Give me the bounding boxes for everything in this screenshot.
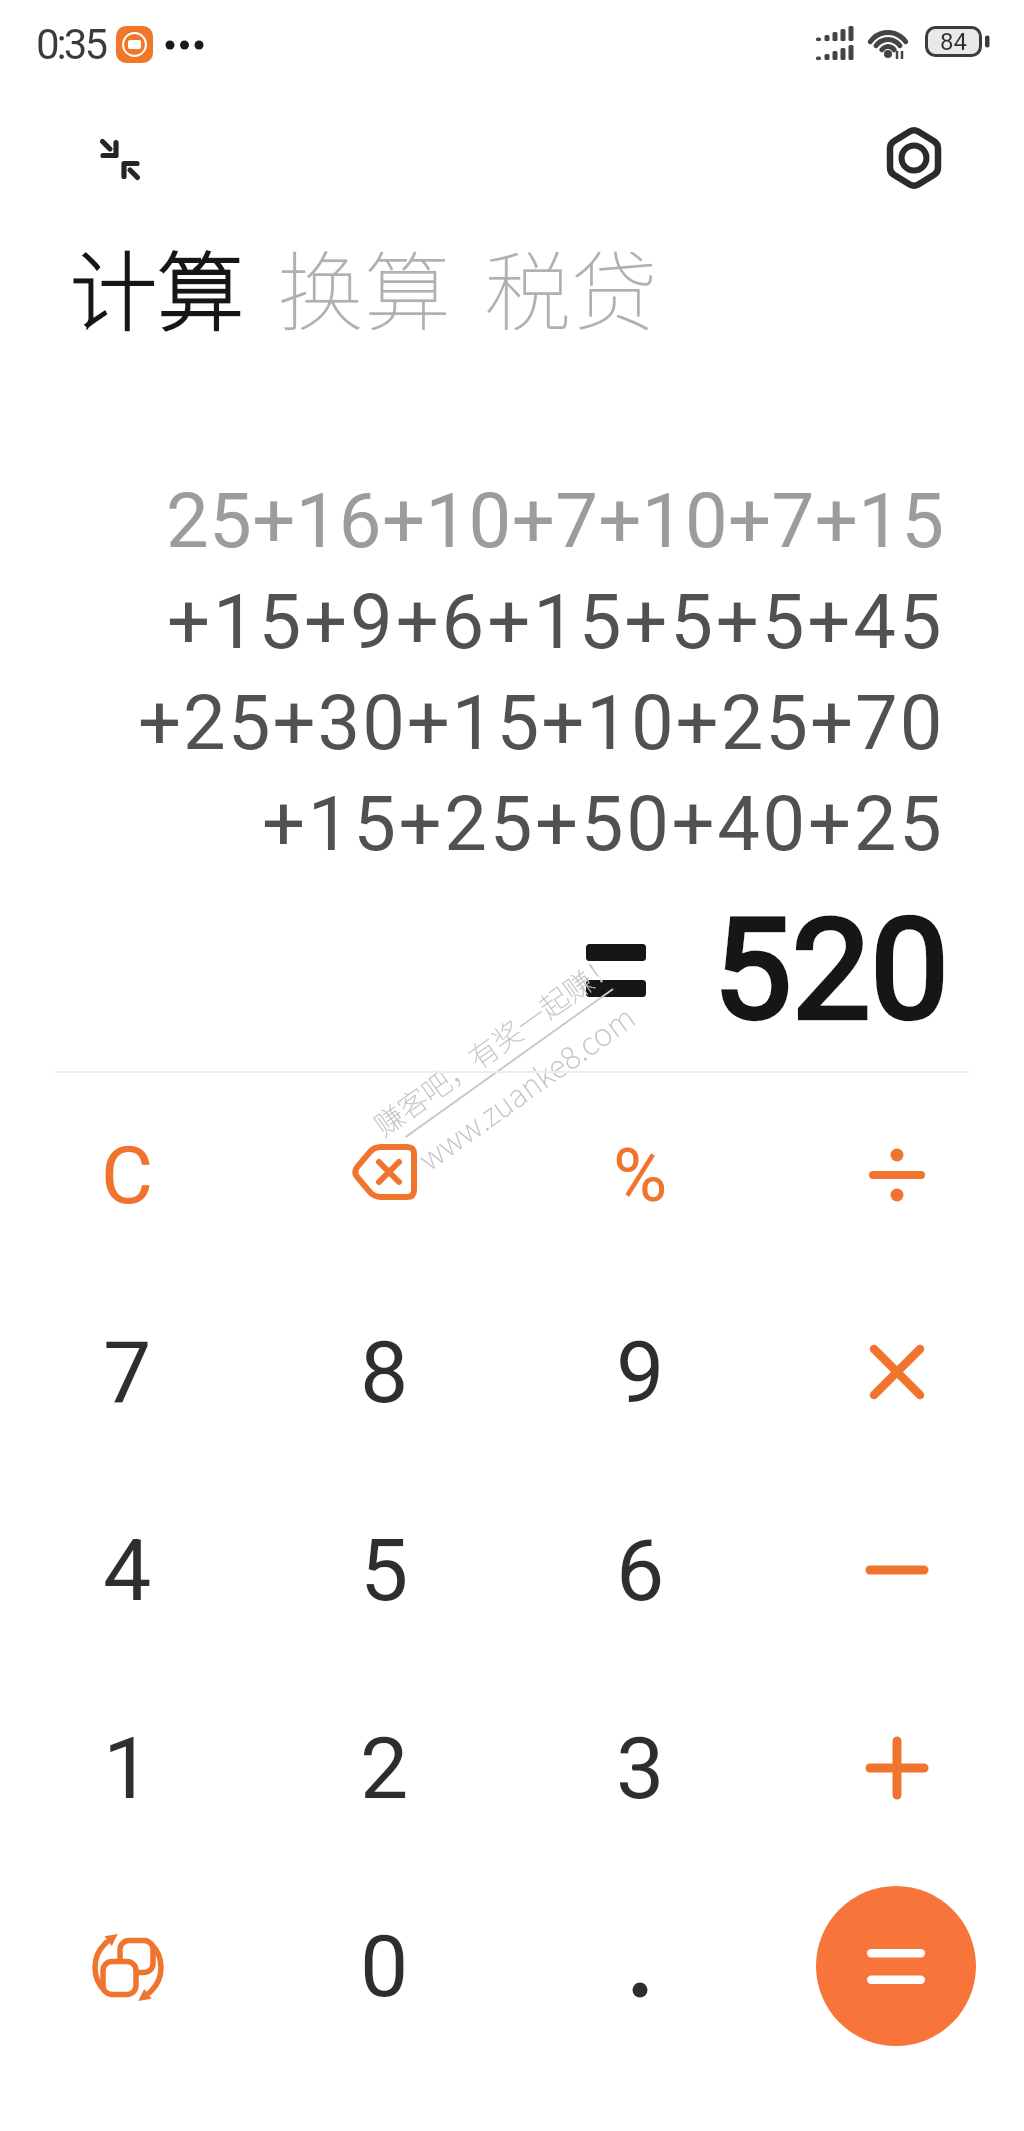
staticText: 0 xyxy=(360,1916,409,2017)
button[interactable]: 换算 xyxy=(277,223,451,333)
button[interactable] xyxy=(782,1678,1012,1858)
button[interactable]: 7 xyxy=(12,1282,242,1462)
button[interactable]: 0 xyxy=(269,1876,499,2056)
staticText: +15+25+50+40+25 xyxy=(262,779,945,868)
staticText: +25+30+15+10+25+70 xyxy=(138,678,945,767)
button[interactable]: 计算 xyxy=(70,223,244,333)
staticText: 520 xyxy=(713,888,950,1052)
button[interactable]: C xyxy=(12,1086,242,1266)
button[interactable] xyxy=(782,1085,1012,1265)
button[interactable] xyxy=(782,1282,1012,1462)
staticText: +15+9+6+15+5+5+45 xyxy=(167,577,945,666)
staticText: 8 xyxy=(360,1322,409,1423)
staticText: 25+16+10+7+10+7+15 xyxy=(166,476,945,565)
staticText: 税贷 xyxy=(484,223,658,333)
staticText: 3 xyxy=(616,1718,665,1819)
staticText: 1 xyxy=(103,1718,152,1819)
button[interactable]: 3 xyxy=(525,1678,755,1858)
button[interactable] xyxy=(782,1480,1012,1660)
button[interactable] xyxy=(91,130,149,188)
staticText: 0:35 xyxy=(36,20,105,69)
staticText: 5 xyxy=(360,1520,409,1621)
button[interactable]: 8 xyxy=(269,1282,499,1462)
staticText: 7 xyxy=(103,1322,152,1423)
button[interactable] xyxy=(13,1877,243,2057)
button[interactable]: 2 xyxy=(269,1678,499,1858)
button[interactable]: % xyxy=(525,1085,755,1265)
staticText: 计算 xyxy=(70,223,244,333)
button[interactable]: 税贷 xyxy=(484,223,658,333)
button[interactable] xyxy=(525,1876,755,2056)
staticText: 84 xyxy=(940,28,967,56)
staticText: % xyxy=(613,1132,668,1219)
staticText: 6 xyxy=(616,1520,665,1621)
button[interactable]: 1 xyxy=(12,1678,242,1858)
button[interactable]: 4 xyxy=(12,1480,242,1660)
staticText: 9 xyxy=(616,1322,665,1423)
staticText: www.zuanke8.com xyxy=(408,993,643,1179)
button[interactable] xyxy=(816,1886,976,2046)
staticText: 4 xyxy=(103,1520,152,1621)
staticText: C xyxy=(101,1129,154,1223)
staticText: 赚客吧，有奖一起赚！ xyxy=(364,941,625,1144)
button[interactable]: 6 xyxy=(525,1480,755,1660)
staticText: 换算 xyxy=(277,223,451,333)
button[interactable] xyxy=(269,1082,499,1262)
button[interactable]: 5 xyxy=(269,1480,499,1660)
staticText: 2 xyxy=(360,1718,409,1819)
button[interactable]: 9 xyxy=(525,1282,755,1462)
button[interactable] xyxy=(884,124,944,184)
